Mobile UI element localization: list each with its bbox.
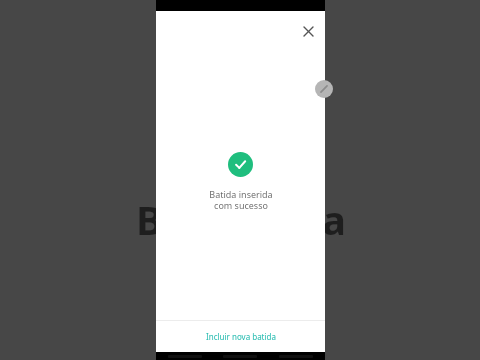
staticText: Batida inserida com sucesso: [209, 188, 273, 212]
staticText: B: [136, 192, 163, 246]
button[interactable]: Editar: [315, 80, 333, 98]
button[interactable]: Incluir nova batida: [156, 321, 325, 352]
staticText: a: [322, 192, 346, 246]
button[interactable]: Fechar: [295, 18, 321, 44]
staticText: Incluir nova batida: [206, 331, 276, 342]
